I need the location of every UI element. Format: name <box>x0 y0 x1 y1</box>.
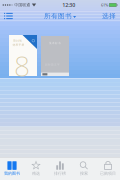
staticText: iBooks <box>12 39 21 42</box>
button[interactable]: 我的图书 <box>0 157 24 180</box>
staticText: 使用手册 <box>12 43 24 47</box>
staticText: 选择 <box>102 12 116 20</box>
staticText: 我的图书 <box>4 171 20 176</box>
staticText: 8 <box>14 47 30 84</box>
button[interactable]: 图书视图 <box>0 10 26 22</box>
button[interactable]: 选择 <box>94 10 120 22</box>
staticText: 某本好书 <box>49 41 61 45</box>
button[interactable]: 排行榜 <box>48 157 72 180</box>
button[interactable]: 搜索 <box>72 157 96 180</box>
staticText: 61% <box>101 2 108 8</box>
button[interactable]: 精选 <box>24 157 48 180</box>
staticText: 已购项目 <box>100 171 116 176</box>
staticText: 排行榜 <box>54 171 66 176</box>
button[interactable]: 所有图书 <box>44 10 76 22</box>
staticText: 中国联通 <box>14 2 30 7</box>
staticText: 精选 <box>32 171 40 176</box>
button[interactable]: 已购项目 <box>96 157 120 180</box>
staticText: 搜索 <box>80 171 88 176</box>
staticText: 12:30 <box>62 1 75 9</box>
staticText: 所有图书 <box>44 12 72 20</box>
